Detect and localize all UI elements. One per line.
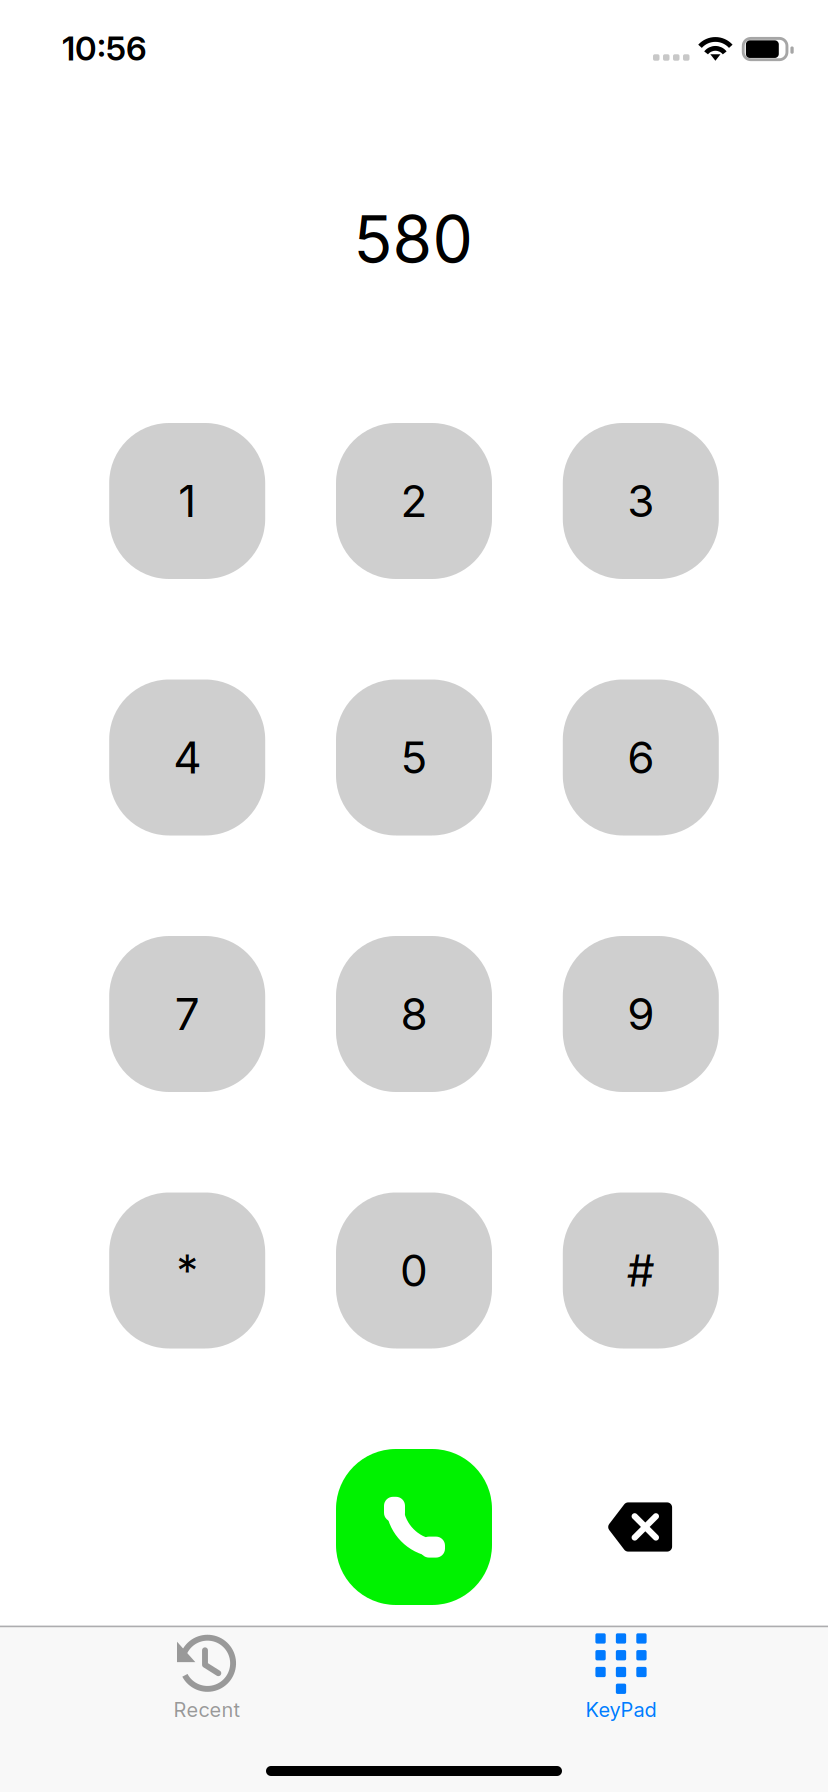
button[interactable]: 4: [109, 679, 265, 835]
staticText: 10:56: [62, 28, 147, 68]
staticText: 6: [627, 731, 654, 784]
staticText: 0: [400, 1244, 428, 1297]
button[interactable]: #: [563, 1192, 719, 1348]
staticText: 2: [400, 474, 427, 528]
staticText: 9: [627, 987, 654, 1041]
button[interactable]: 8: [336, 936, 492, 1092]
button[interactable]: 0: [336, 1192, 492, 1348]
staticText: *: [176, 1244, 198, 1297]
staticText: Recent: [173, 1697, 240, 1722]
staticText: 5: [400, 731, 427, 784]
button[interactable]: 5: [336, 679, 492, 835]
button[interactable]: 2: [336, 423, 492, 579]
button[interactable]: Delete: [563, 1449, 719, 1605]
button[interactable]: Recent: [0, 1627, 414, 1792]
button[interactable]: 3: [563, 423, 719, 579]
staticText: KeyPad: [585, 1697, 656, 1722]
staticText: #: [627, 1244, 655, 1297]
staticText: 8: [400, 987, 427, 1041]
button[interactable]: 7: [109, 936, 265, 1092]
button[interactable]: Call: [336, 1449, 492, 1605]
staticText: 7: [175, 987, 200, 1041]
button[interactable]: 9: [563, 936, 719, 1092]
button[interactable]: 1: [109, 423, 265, 579]
button[interactable]: *: [109, 1192, 265, 1348]
staticText: 1: [178, 474, 196, 528]
staticText: 3: [627, 474, 654, 528]
staticText: 580: [353, 200, 472, 278]
staticText: 4: [173, 731, 201, 784]
button[interactable]: KeyPad: [414, 1627, 828, 1792]
button[interactable]: 6: [563, 679, 719, 835]
